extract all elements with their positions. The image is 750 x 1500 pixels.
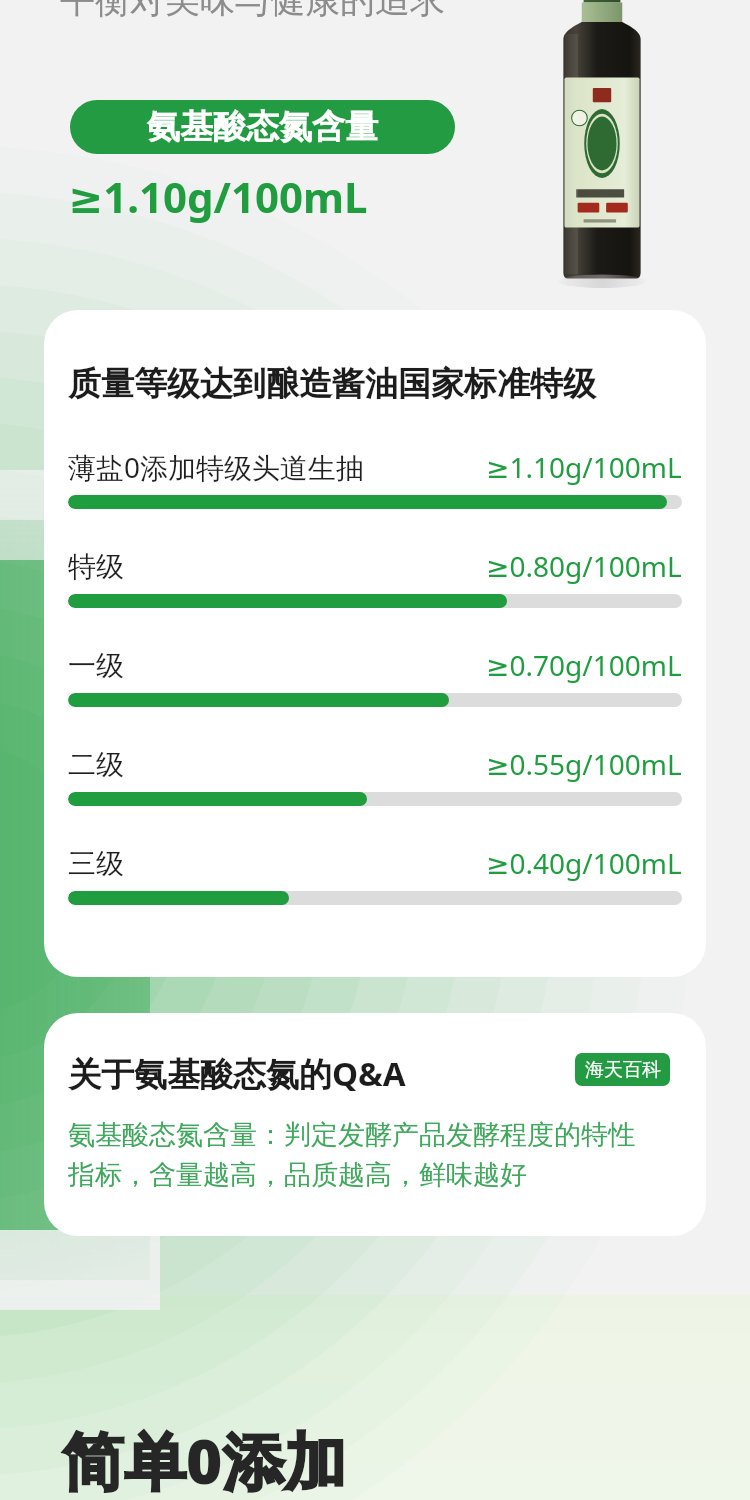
staticText: 氨基酸态氮含量 [147, 106, 378, 148]
staticText: 特级 [68, 549, 124, 584]
staticText: 氨基酸态氮含量：判定发酵产品发酵程度的特性 指标，含量越高，品质越高，鲜味越好 [68, 1118, 688, 1192]
other: 薄盐特级头道生抽瓶 [556, 0, 648, 286]
button[interactable]: 氨基酸态氮含量 [70, 100, 455, 154]
staticText: 二级 [68, 747, 124, 782]
staticText: 三级 [68, 846, 124, 881]
staticText: 一级 [68, 648, 124, 683]
staticText: 平衡对美味与健康的追求 [60, 0, 445, 22]
staticText: 关于氨基酸态氮的Q&A [68, 1051, 406, 1096]
staticText: ≥0.70g/100mL [486, 646, 682, 684]
staticText: ≥0.55g/100mL [486, 745, 682, 783]
button[interactable]: 海天百科 [575, 1053, 670, 1086]
staticText: 质量等级达到酿造酱油国家标准特级 [68, 363, 596, 405]
staticText: ≥0.40g/100mL [486, 844, 682, 882]
staticText: ≥0.80g/100mL [486, 547, 682, 585]
staticText: 简单0添加 [62, 1418, 347, 1500]
staticText: 海天百科 [585, 1058, 661, 1082]
staticText: ≥1.10g/100mL [68, 168, 368, 225]
staticText: 薄盐0添加特级头道生抽 [68, 448, 365, 486]
staticText: ≥1.10g/100mL [486, 448, 682, 486]
